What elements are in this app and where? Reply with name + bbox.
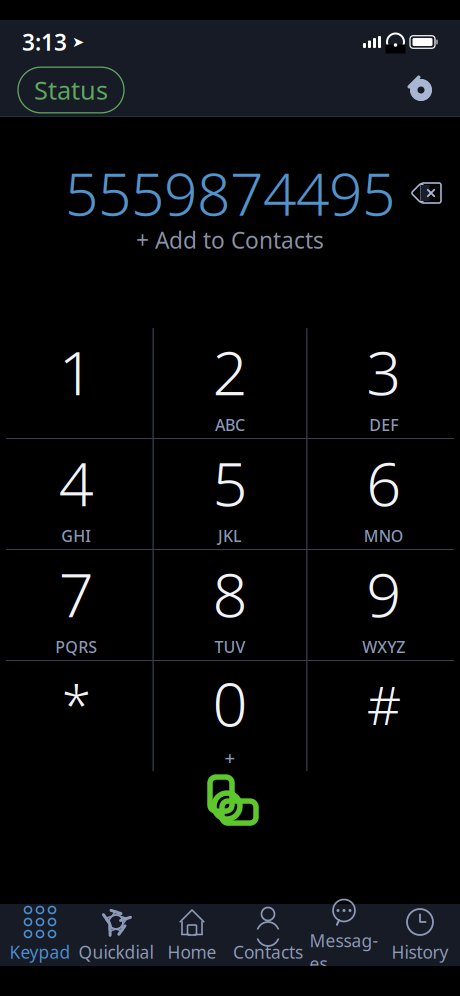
button[interactable]: 6: [307, 439, 460, 549]
button[interactable]: + Add to Contacts: [126, 221, 334, 259]
staticText: 3:13: [22, 27, 67, 57]
staticText: ABC: [215, 414, 245, 435]
staticText: 5559874495: [65, 154, 395, 232]
staticText: Keypad: [9, 940, 70, 963]
staticText: TUV: [214, 636, 245, 657]
button[interactable]: Home: [154, 904, 230, 966]
button[interactable]: Settings: [400, 69, 442, 111]
staticText: + Add to Contacts: [136, 225, 324, 255]
button[interactable]: 8: [154, 550, 306, 660]
button[interactable]: 5: [154, 439, 306, 549]
button[interactable]: Status: [18, 67, 124, 113]
staticText: 9: [366, 553, 401, 634]
staticText: PQRS: [55, 636, 97, 657]
staticText: JKL: [218, 525, 242, 546]
button[interactable]: Contacts: [230, 904, 306, 966]
staticText: Home: [167, 940, 216, 963]
staticText: 4: [59, 442, 94, 523]
staticText: ➤: [72, 34, 84, 50]
button[interactable]: Keypad: [2, 904, 78, 966]
button[interactable]: 4: [0, 439, 152, 549]
button[interactable]: Call: [0, 771, 460, 835]
button[interactable]: 0: [154, 661, 306, 771]
button[interactable]: #: [307, 661, 460, 771]
button[interactable]: Delete: [402, 173, 452, 213]
staticText: MNO: [364, 525, 404, 546]
staticText: Messages: [309, 929, 378, 975]
staticText: 6: [366, 442, 401, 523]
staticText: Status: [34, 73, 108, 107]
button[interactable]: *: [0, 661, 152, 771]
button[interactable]: 7: [0, 550, 152, 660]
staticText: 5: [212, 442, 247, 523]
staticText: Contacts: [233, 940, 303, 963]
staticText: 1: [59, 331, 94, 412]
staticText: DEF: [369, 414, 398, 435]
staticText: *: [62, 669, 91, 740]
staticText: 0: [212, 662, 247, 743]
button[interactable]: 1: [0, 328, 152, 438]
staticText: +: [224, 745, 235, 770]
staticText: 3: [366, 331, 401, 412]
staticText: 8: [212, 553, 247, 634]
staticText: WXYZ: [362, 636, 405, 657]
button[interactable]: Quickdial: [78, 904, 154, 966]
button[interactable]: 9: [307, 550, 460, 660]
staticText: Quickdial: [78, 940, 153, 963]
button[interactable]: Messages: [306, 904, 382, 966]
button[interactable]: 2: [154, 328, 306, 438]
button[interactable]: 3: [307, 328, 460, 438]
staticText: History: [391, 940, 448, 963]
button[interactable]: History: [382, 904, 458, 966]
staticText: #: [367, 669, 401, 740]
staticText: GHI: [61, 525, 91, 546]
staticText: 2: [212, 331, 247, 412]
staticText: 7: [59, 553, 94, 634]
